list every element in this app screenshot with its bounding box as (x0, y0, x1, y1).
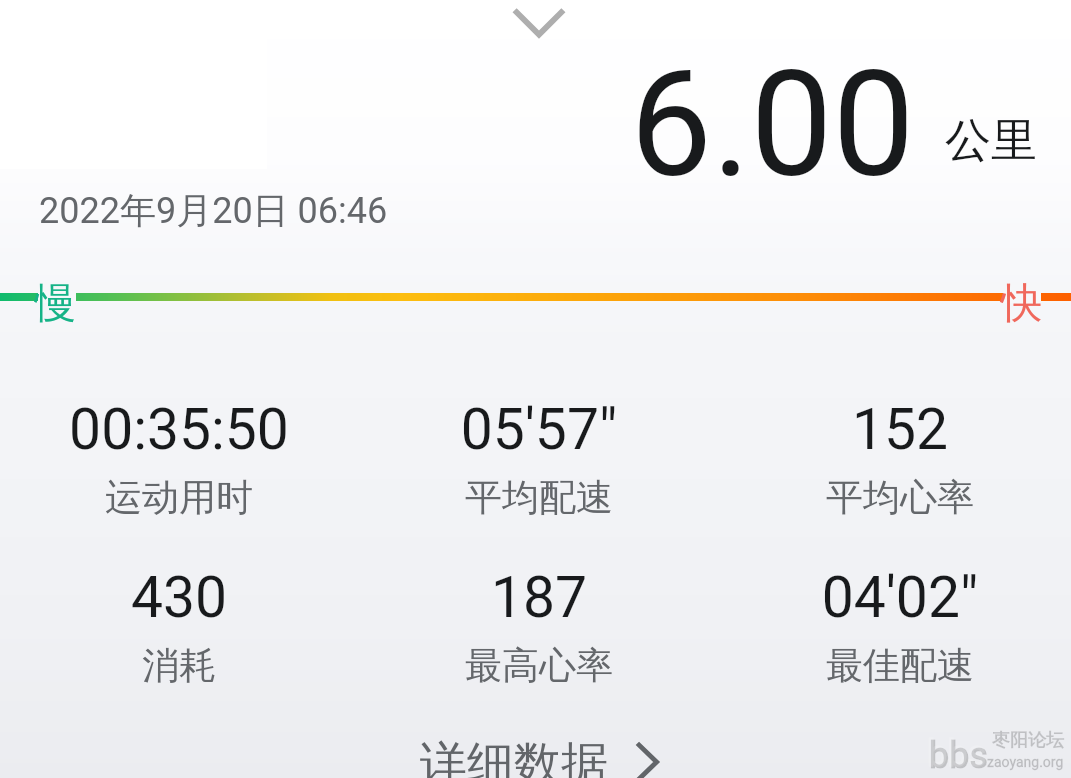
staticText: 运动用时 (0, 474, 359, 521)
button[interactable]: 00:35:50 (0, 396, 359, 526)
staticText: 05'57" (359, 396, 719, 463)
staticText: 消耗 (0, 642, 359, 689)
staticText: zaoyang.org (987, 754, 1064, 770)
staticText: 2022年9月20日 06:46 (39, 188, 388, 233)
staticText: 00:35:50 (0, 396, 359, 463)
button[interactable]: 04'02" (720, 564, 1071, 694)
staticText: 152 (720, 396, 1071, 463)
button[interactable]: 05'57" (359, 396, 719, 526)
staticText: 详细数据 (420, 735, 608, 778)
staticText: 6.00 (630, 40, 915, 211)
button[interactable]: Collapse (497, 0, 581, 50)
button[interactable]: 详细数据 (398, 716, 680, 778)
staticText: bbs (927, 733, 987, 775)
staticText: 430 (0, 564, 359, 631)
staticText: 公里 (945, 112, 1037, 170)
staticText: 187 (359, 564, 719, 631)
button[interactable]: 187 (359, 564, 719, 694)
staticText: bbs (929, 735, 989, 777)
staticText: 最佳配速 (720, 642, 1071, 689)
staticText: 平均心率 (720, 474, 1071, 521)
staticText: 枣阳论坛 (992, 729, 1064, 752)
staticText: 平均配速 (359, 474, 719, 521)
staticText: 04'02" (720, 564, 1071, 631)
staticText: 快 (1001, 278, 1042, 330)
staticText: 最高心率 (359, 642, 719, 689)
button[interactable]: 430 (0, 564, 359, 694)
button[interactable]: 152 (720, 396, 1071, 526)
staticText: 慢 (35, 278, 76, 330)
